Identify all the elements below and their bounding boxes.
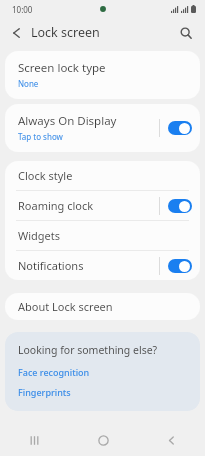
staticText: None <box>18 78 39 89</box>
button[interactable]: Back <box>6 22 28 44</box>
button[interactable]: Recents <box>0 424 69 456</box>
button[interactable]: Back <box>137 424 205 456</box>
staticText: Face recognition <box>18 366 90 378</box>
staticText: Clock style <box>18 168 73 183</box>
button[interactable]: About Lock screen <box>5 293 200 320</box>
staticText: About Lock screen <box>18 299 113 314</box>
button[interactable]: Roaming clock <box>5 191 200 220</box>
staticText: Always On Display <box>18 113 117 129</box>
staticText: Widgets <box>18 228 61 243</box>
button[interactable]: Search <box>175 22 197 44</box>
button[interactable]: Toggle on <box>168 199 192 213</box>
staticText: Notifications <box>18 258 159 273</box>
button[interactable]: Clock style <box>5 161 200 190</box>
button[interactable]: Face recognition <box>18 366 90 378</box>
button[interactable]: Toggle on <box>168 259 192 273</box>
button[interactable]: Always On Display <box>5 104 200 152</box>
button[interactable]: Widgets <box>5 221 200 250</box>
staticText: Roaming clock <box>18 198 159 213</box>
staticText: Tap to show <box>18 131 63 142</box>
staticText: Fingerprints <box>18 386 71 398</box>
button[interactable]: Home <box>69 424 137 456</box>
staticText: Looking for something else? <box>18 343 158 357</box>
button[interactable]: Fingerprints <box>18 386 71 398</box>
button[interactable]: Screen lock type <box>5 51 200 99</box>
staticText: Lock screen <box>31 24 100 41</box>
button[interactable]: Toggle on <box>168 121 192 135</box>
staticText: Screen lock type <box>18 60 106 76</box>
staticText: 10:00 <box>12 4 33 15</box>
button[interactable]: Notifications <box>5 251 200 280</box>
